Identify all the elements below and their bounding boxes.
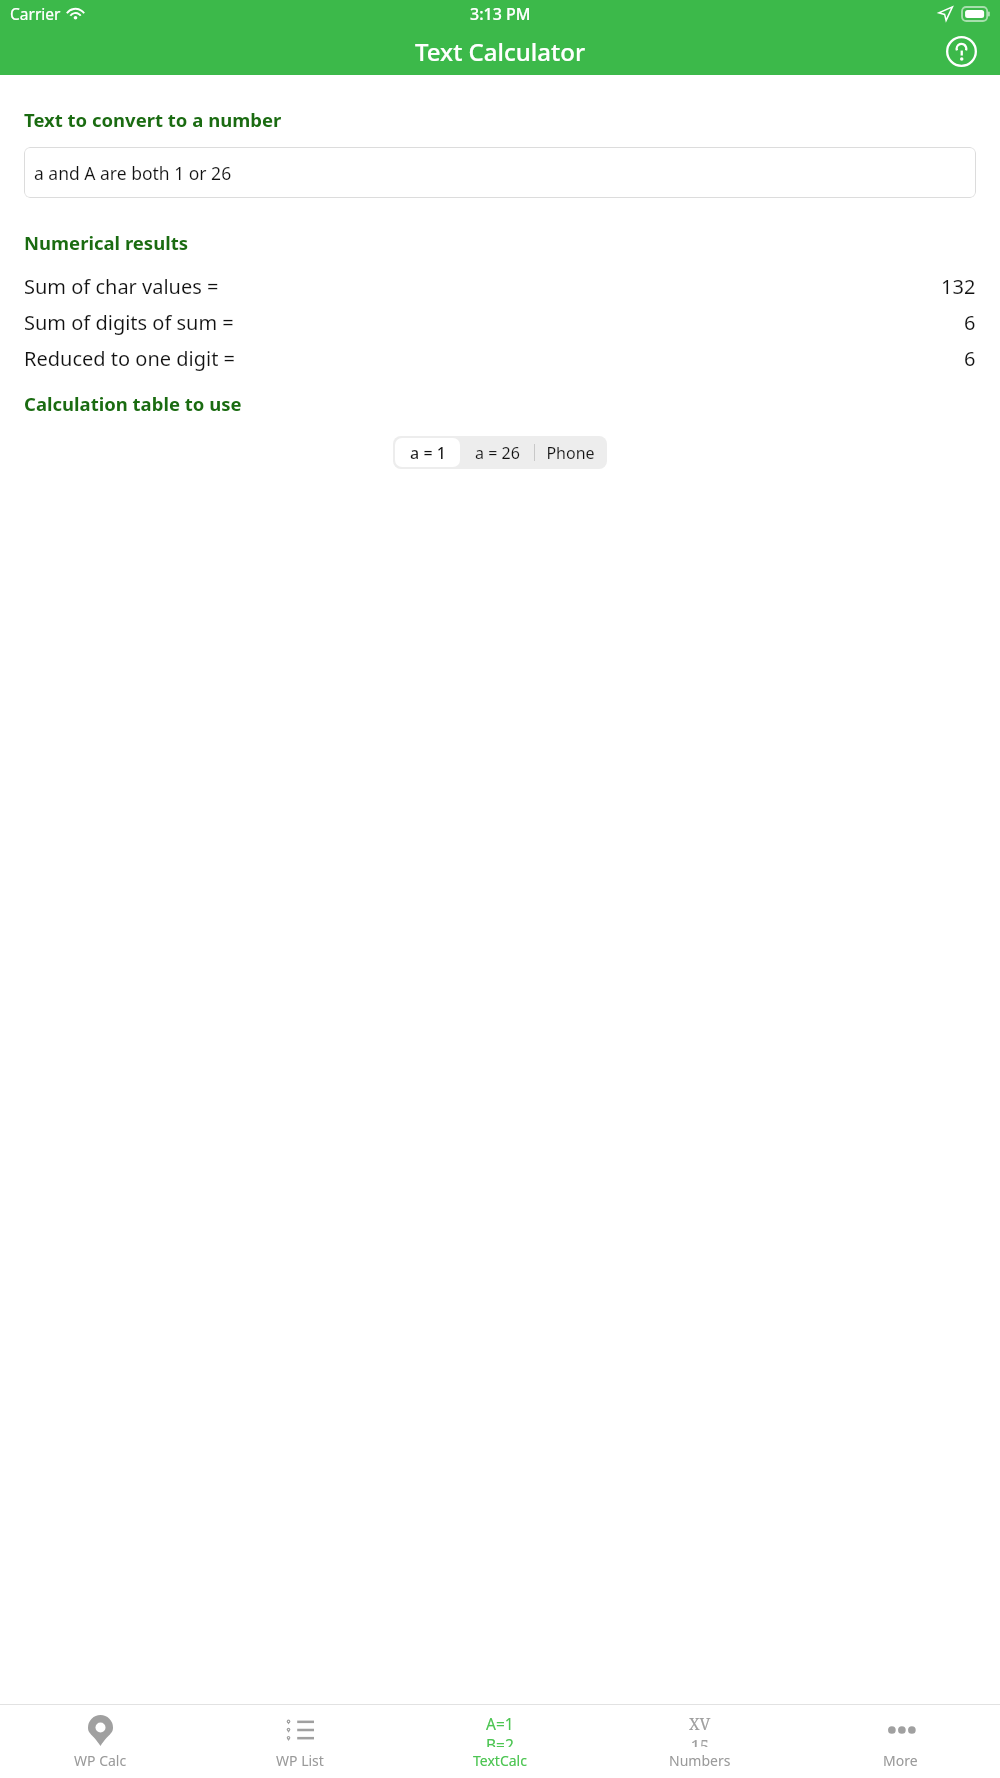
button[interactable]: Help xyxy=(940,30,982,72)
button[interactable]: WP Calc xyxy=(0,1705,200,1778)
staticText: 3:13 PM xyxy=(470,3,531,25)
staticText: Sum of char values = xyxy=(24,273,219,300)
staticText: Text Calculator xyxy=(415,35,586,68)
button[interactable]: a = 26 xyxy=(460,438,534,467)
staticText: A=1 xyxy=(486,1713,514,1734)
staticText: a = 1 xyxy=(410,442,446,464)
staticText: Reduced to one digit = xyxy=(24,345,235,372)
staticText: a and A are both 1 or 26 xyxy=(34,161,232,185)
button[interactable]: a = 1 xyxy=(395,438,460,467)
button[interactable]: a and A are both 1 or 26 xyxy=(24,147,976,198)
button[interactable]: A=1 xyxy=(400,1705,600,1778)
button[interactable]: Phone xyxy=(535,438,605,467)
staticText: 6 xyxy=(964,309,976,336)
staticText: WP Calc xyxy=(74,1751,127,1770)
button[interactable]: Sum of char values = xyxy=(0,268,1000,304)
staticText: Calculation table to use xyxy=(24,391,242,416)
staticText: Sum of digits of sum = xyxy=(24,309,234,336)
staticText: Numbers xyxy=(669,1751,731,1770)
staticText: 6 xyxy=(964,345,976,372)
staticText: 132 xyxy=(941,273,976,300)
staticText: WP List xyxy=(276,1751,324,1770)
button[interactable]: Sum of digits of sum = xyxy=(0,304,1000,340)
staticText: Phone xyxy=(546,442,595,464)
button[interactable]: Reduced to one digit = xyxy=(0,340,1000,376)
staticText: TextCalc xyxy=(473,1751,527,1770)
staticText: Numerical results xyxy=(24,230,188,255)
staticText: a = 26 xyxy=(475,442,520,464)
staticText: B=2 xyxy=(486,1734,514,1747)
button[interactable]: WP List xyxy=(200,1705,400,1778)
button[interactable]: XV xyxy=(600,1705,800,1778)
staticText: Carrier xyxy=(10,3,61,24)
staticText: Text to convert to a number xyxy=(24,107,282,132)
staticText: 15 xyxy=(691,1735,709,1747)
staticText: XV xyxy=(689,1713,711,1735)
staticText: More xyxy=(883,1751,918,1770)
button[interactable]: More xyxy=(800,1705,1000,1778)
